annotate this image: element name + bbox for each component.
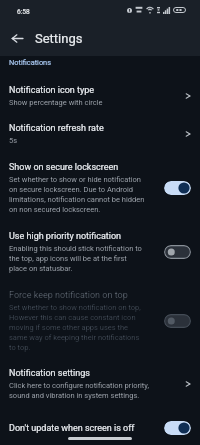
button[interactable]: Force keep notification on top <box>0 281 200 360</box>
button[interactable]: Don't update when screen is off <box>0 407 200 445</box>
staticText: 5s <box>9 136 18 145</box>
staticText: Notifications <box>9 58 52 67</box>
button[interactable]: Notification settings <box>0 360 200 407</box>
staticText: 6:58 <box>17 8 30 16</box>
staticText: Settings <box>35 31 83 46</box>
button[interactable]: Show on secure lockscreen <box>0 153 200 222</box>
button[interactable]: Back <box>6 27 29 50</box>
staticText: Force keep notification on top <box>9 290 128 301</box>
button[interactable]: Toggle off <box>164 314 191 328</box>
staticText: Notification icon type <box>9 85 95 96</box>
button[interactable]: Toggle off <box>164 245 191 259</box>
staticText: Set whether to show notification on top,… <box>9 303 145 351</box>
staticText: Notification settings <box>9 368 90 379</box>
button[interactable]: Toggle on <box>164 421 191 435</box>
button[interactable]: Notification icon type <box>0 77 200 115</box>
staticText: Click here to configure notification pri… <box>9 381 152 399</box>
staticText: Notification refresh rate <box>9 123 104 134</box>
staticText: Show on secure lockscreen <box>9 162 119 173</box>
staticText: Don't update when screen is off <box>9 423 135 434</box>
staticText: Enabling this should stick notification … <box>9 244 145 272</box>
button[interactable]: Use high priority notification <box>0 222 200 281</box>
staticText: Use high priority notification <box>9 231 122 242</box>
staticText: Set whether to show or hide notification… <box>9 175 145 213</box>
button[interactable]: Notification refresh rate <box>0 115 200 153</box>
button[interactable]: Toggle on <box>164 181 191 195</box>
staticText: Show percentage with circle <box>9 98 103 107</box>
